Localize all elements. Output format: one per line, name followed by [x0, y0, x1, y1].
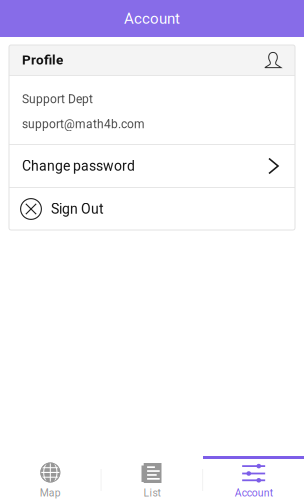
staticText: support@math4b.com: [22, 117, 145, 131]
staticText: Map: [40, 487, 61, 499]
button[interactable]: Map: [0, 456, 101, 500]
button[interactable]: Sign Out: [9, 188, 295, 230]
staticText: List: [143, 487, 160, 499]
staticText: Account: [235, 487, 273, 499]
staticText: Sign Out: [51, 201, 104, 217]
staticText: Profile: [22, 52, 63, 68]
staticText: Support Dept: [22, 92, 93, 106]
button[interactable]: Change password: [9, 145, 295, 187]
staticText: Account: [124, 10, 180, 27]
button[interactable]: List: [102, 456, 202, 500]
staticText: Change password: [22, 158, 135, 174]
button[interactable]: Account: [203, 456, 304, 500]
